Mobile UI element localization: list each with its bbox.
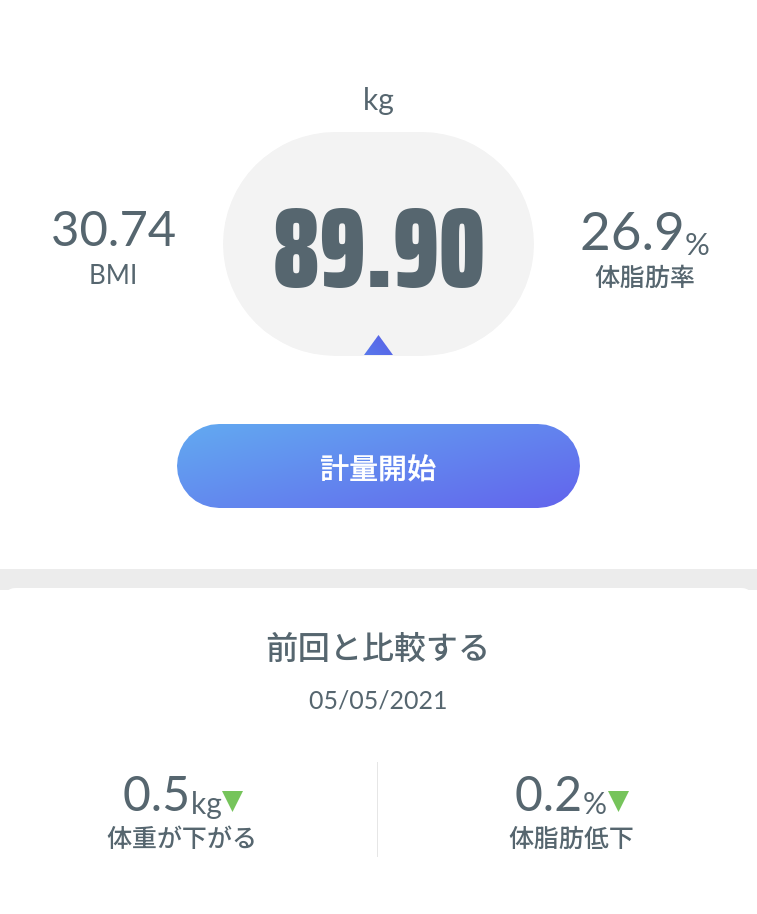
staticText: BMI xyxy=(89,258,138,289)
staticText: 体脂肪率 xyxy=(595,257,696,293)
staticText: 05/05/2021 xyxy=(309,684,448,714)
staticText: % xyxy=(583,784,608,820)
staticText: 89.90 xyxy=(273,158,485,337)
staticText: 計量開始 xyxy=(320,445,437,487)
staticText: 30.74 xyxy=(51,198,177,257)
staticText: 26.9 xyxy=(580,198,685,262)
staticText: 体脂肪低下 xyxy=(509,818,635,854)
button[interactable]: 計量開始 xyxy=(177,424,580,508)
staticText: 前回と比較する xyxy=(266,622,491,668)
staticText: 0.2 xyxy=(515,764,583,822)
staticText: kg xyxy=(363,80,394,116)
staticText: 0.5 xyxy=(123,764,191,822)
staticText: 体重が下がる xyxy=(107,818,258,854)
staticText: % xyxy=(685,224,710,261)
staticText: kg xyxy=(191,784,222,820)
